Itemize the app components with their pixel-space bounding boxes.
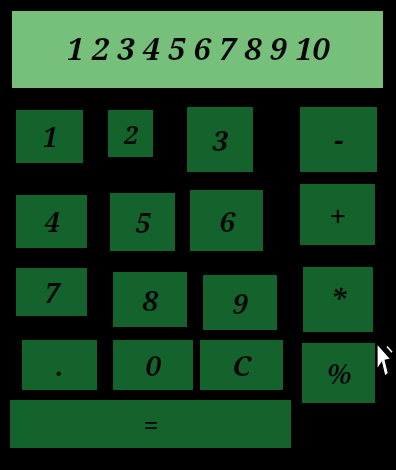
staticText: - <box>334 119 344 160</box>
staticText: . <box>55 347 64 384</box>
button[interactable]: 3 <box>187 107 253 172</box>
button[interactable]: 4 <box>16 195 87 248</box>
button[interactable]: Minus <box>300 107 377 172</box>
button[interactable]: Percent <box>302 343 375 403</box>
staticText: + <box>329 194 347 236</box>
button[interactable]: 1 <box>16 110 83 163</box>
button[interactable]: 7 <box>16 268 87 316</box>
staticText: % <box>326 354 352 392</box>
staticText: 8 <box>142 281 158 319</box>
button[interactable]: 2 <box>108 110 153 157</box>
staticText: 5 <box>135 204 151 241</box>
button[interactable]: 1 2 3 4 5 6 7 8 9 10 <box>12 11 383 88</box>
staticText: = <box>143 406 159 443</box>
staticText: C <box>232 346 251 384</box>
button[interactable]: 8 <box>113 272 187 327</box>
staticText: 7 <box>44 274 60 311</box>
button[interactable]: 5 <box>110 193 175 251</box>
staticText: * <box>329 279 348 320</box>
button[interactable]: Clear <box>200 340 283 390</box>
button[interactable]: 0 <box>113 340 193 390</box>
button[interactable]: Equals <box>10 400 291 448</box>
button[interactable]: 6 <box>190 190 263 251</box>
button[interactable]: Decimal point <box>22 340 97 390</box>
button[interactable]: 9 <box>203 275 277 330</box>
staticText: 1 <box>42 118 58 155</box>
staticText: 0 <box>145 346 161 384</box>
staticText: 6 <box>219 202 235 240</box>
staticText: 4 <box>44 203 60 240</box>
staticText: 2 <box>124 117 138 151</box>
button[interactable]: Multiply <box>303 267 373 332</box>
staticText: 3 <box>212 121 228 159</box>
button[interactable]: Plus <box>300 184 375 245</box>
staticText: 1 2 3 4 5 6 7 8 9 10 <box>66 27 330 67</box>
staticText: 9 <box>232 284 248 322</box>
